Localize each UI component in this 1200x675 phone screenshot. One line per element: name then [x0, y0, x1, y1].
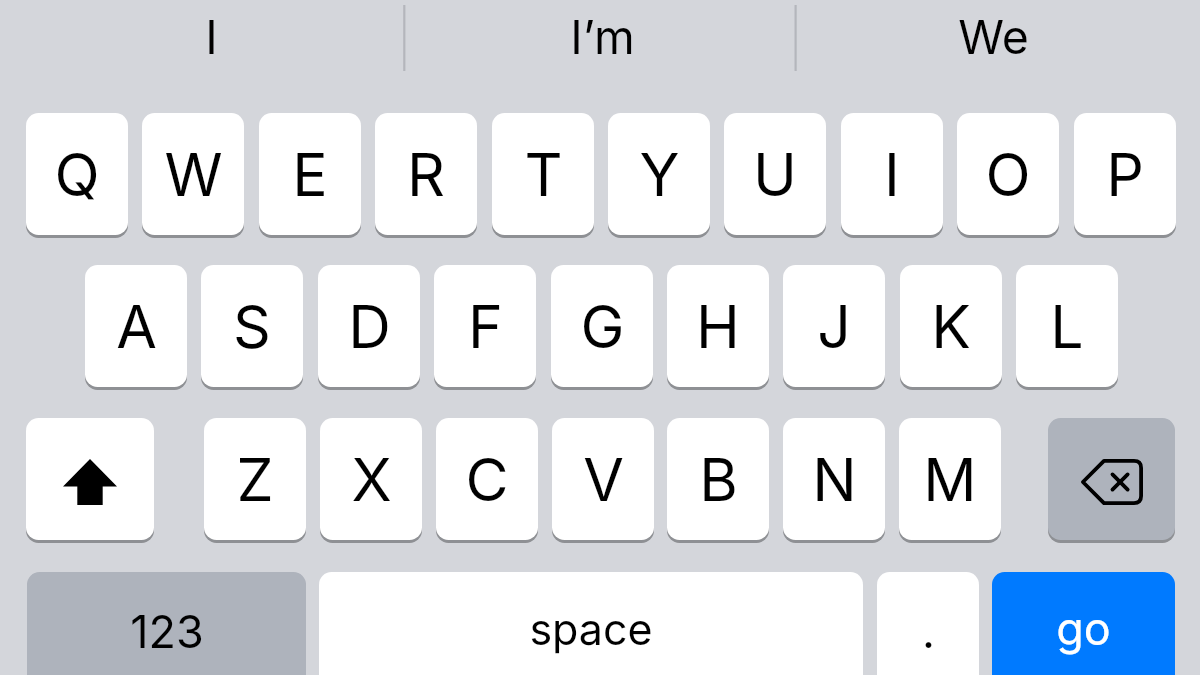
button[interactable]: Q — [26, 113, 128, 235]
staticText: space — [529, 603, 653, 655]
button[interactable]: L — [1016, 265, 1118, 387]
button[interactable]: K — [900, 265, 1002, 387]
staticText: R — [407, 139, 445, 210]
staticText: D — [348, 291, 391, 362]
button[interactable]: I — [841, 113, 943, 235]
staticText: I’m — [570, 9, 635, 65]
staticText: V — [583, 444, 624, 515]
button[interactable]: X — [320, 418, 422, 540]
staticText: We — [958, 9, 1029, 65]
staticText: P — [1106, 139, 1144, 210]
button[interactable]: T — [492, 113, 594, 235]
button[interactable]: F — [434, 265, 536, 387]
staticText: F — [468, 291, 503, 362]
staticText: go — [1056, 601, 1111, 655]
button[interactable]: B — [667, 418, 769, 540]
staticText: T — [524, 139, 563, 210]
staticText: E — [292, 139, 328, 210]
staticText: . — [922, 604, 935, 658]
staticText: H — [696, 291, 740, 362]
staticText: K — [931, 291, 971, 362]
staticText: W — [164, 139, 223, 210]
button[interactable]: Shift — [26, 418, 154, 540]
staticText: Y — [639, 139, 680, 210]
button[interactable]: Z — [204, 418, 306, 540]
staticText: X — [351, 444, 392, 515]
button[interactable]: C — [436, 418, 538, 540]
button[interactable]: I’m — [407, 0, 798, 88]
staticText: S — [233, 291, 271, 362]
button[interactable]: D — [318, 265, 420, 387]
button[interactable]: Delete — [1048, 418, 1175, 540]
button[interactable]: P — [1074, 113, 1176, 235]
button[interactable]: W — [142, 113, 244, 235]
button[interactable]: G — [551, 265, 653, 387]
staticText: G — [580, 291, 625, 362]
button[interactable]: 123 — [27, 572, 306, 675]
staticText: U — [753, 139, 797, 210]
staticText: O — [985, 139, 1031, 210]
button[interactable]: O — [957, 113, 1059, 235]
button[interactable]: E — [259, 113, 361, 235]
button[interactable]: M — [899, 418, 1001, 540]
staticText: Z — [236, 444, 274, 515]
staticText: J — [817, 291, 851, 362]
staticText: I — [884, 139, 900, 210]
button[interactable]: Y — [608, 113, 710, 235]
staticText: N — [812, 444, 857, 515]
staticText: B — [699, 444, 738, 515]
staticText: M — [923, 444, 977, 515]
button[interactable]: U — [724, 113, 826, 235]
button[interactable]: H — [667, 265, 769, 387]
button[interactable]: go — [992, 572, 1175, 675]
button[interactable]: . — [877, 572, 979, 675]
staticText: A — [116, 291, 157, 362]
button[interactable]: V — [552, 418, 654, 540]
staticText: I — [205, 9, 218, 65]
button[interactable]: A — [85, 265, 187, 387]
button[interactable]: N — [783, 418, 885, 540]
button[interactable]: I — [16, 0, 407, 88]
button[interactable]: S — [201, 265, 303, 387]
staticText: L — [1050, 291, 1084, 362]
staticText: C — [465, 444, 509, 515]
button[interactable]: J — [783, 265, 885, 387]
button[interactable]: We — [798, 0, 1189, 88]
button[interactable]: space — [319, 572, 863, 675]
button[interactable]: R — [375, 113, 477, 235]
staticText: Q — [54, 139, 100, 210]
staticText: 123 — [130, 604, 204, 658]
